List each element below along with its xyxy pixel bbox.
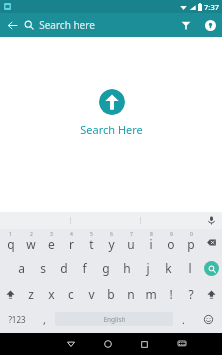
button[interactable]: Back bbox=[52, 333, 89, 355]
staticText: 2 bbox=[30, 231, 33, 238]
staticText: a bbox=[18, 260, 25, 276]
staticText: Search Here bbox=[80, 122, 143, 137]
button[interactable]: 8 bbox=[141, 229, 161, 255]
staticText: z bbox=[28, 286, 34, 302]
button[interactable]: Shift bbox=[201, 281, 222, 307]
staticText: 7:37 bbox=[204, 2, 219, 12]
staticText: i bbox=[149, 236, 153, 252]
staticText: k bbox=[165, 260, 172, 276]
button[interactable]: k bbox=[158, 255, 179, 281]
button[interactable]: Search here bbox=[24, 13, 174, 37]
button[interactable]: 7 bbox=[121, 229, 141, 255]
button[interactable]: h bbox=[116, 255, 137, 281]
button[interactable]: Voice input bbox=[200, 212, 222, 229]
button[interactable]: v bbox=[81, 281, 101, 307]
button[interactable]: b bbox=[101, 281, 121, 307]
staticText: m bbox=[145, 286, 157, 302]
button[interactable]: c bbox=[61, 281, 81, 307]
button[interactable]: 6 bbox=[101, 229, 121, 255]
button[interactable]: Help bbox=[198, 13, 222, 37]
button[interactable]: . bbox=[173, 307, 194, 331]
staticText: g bbox=[102, 260, 110, 276]
staticText: 8 bbox=[150, 231, 153, 238]
staticText: 5 bbox=[90, 231, 93, 238]
button[interactable]: 2 bbox=[21, 229, 41, 255]
staticText: English bbox=[103, 315, 126, 324]
button[interactable]: ? bbox=[181, 281, 201, 307]
staticText: . bbox=[182, 312, 185, 327]
button[interactable]: Search Here bbox=[99, 89, 125, 115]
staticText: p bbox=[187, 236, 195, 252]
button[interactable]: 9 bbox=[161, 229, 181, 255]
staticText: , bbox=[43, 312, 46, 327]
button[interactable]: ! bbox=[161, 281, 181, 307]
button[interactable]: 1 bbox=[0, 229, 21, 255]
button[interactable]: Back bbox=[0, 13, 24, 37]
button[interactable]: Backspace bbox=[201, 229, 222, 255]
button[interactable]: 4 bbox=[61, 229, 81, 255]
staticText: x bbox=[48, 286, 55, 302]
button[interactable]: Home bbox=[89, 333, 126, 355]
staticText: l bbox=[188, 260, 192, 276]
staticText: d bbox=[60, 260, 68, 276]
staticText: w bbox=[26, 236, 36, 252]
staticText: e bbox=[48, 236, 55, 252]
button[interactable]: Filter bbox=[174, 13, 198, 37]
button[interactable]: Recents bbox=[126, 333, 163, 355]
staticText: o bbox=[167, 236, 175, 252]
staticText: ? bbox=[188, 286, 194, 302]
staticText: c bbox=[68, 286, 74, 302]
staticText: r bbox=[69, 236, 74, 252]
button[interactable]: s bbox=[32, 255, 53, 281]
staticText: 6 bbox=[110, 231, 113, 238]
button[interactable]: z bbox=[21, 281, 41, 307]
staticText: j bbox=[146, 260, 150, 276]
staticText: 3 bbox=[50, 231, 53, 238]
button[interactable]: Emoji bbox=[194, 307, 222, 331]
button[interactable]: Search bbox=[200, 255, 222, 281]
button[interactable]: m bbox=[141, 281, 161, 307]
button[interactable]: 0 bbox=[181, 229, 201, 255]
staticText: v bbox=[88, 286, 95, 302]
staticText: Search here bbox=[39, 18, 95, 32]
button[interactable]: l bbox=[179, 255, 200, 281]
staticText: y bbox=[108, 236, 115, 252]
staticText: 7 bbox=[130, 231, 133, 238]
staticText: 4 bbox=[70, 231, 73, 238]
button[interactable]: f bbox=[74, 255, 95, 281]
button[interactable]: a bbox=[11, 255, 32, 281]
staticText: h bbox=[123, 260, 131, 276]
staticText: 1 bbox=[9, 231, 12, 238]
button[interactable]: Hide keyboard bbox=[163, 333, 200, 355]
button[interactable]: x bbox=[41, 281, 61, 307]
staticText: 9 bbox=[170, 231, 173, 238]
staticText: q bbox=[7, 236, 15, 252]
staticText: t bbox=[89, 236, 94, 252]
staticText: n bbox=[127, 286, 135, 302]
staticText: s bbox=[40, 260, 46, 276]
button[interactable]: d bbox=[53, 255, 74, 281]
button[interactable]: n bbox=[121, 281, 141, 307]
staticText: f bbox=[82, 260, 87, 276]
staticText: b bbox=[107, 286, 115, 302]
button[interactable]: , bbox=[34, 307, 55, 331]
staticText: ?123 bbox=[8, 314, 26, 325]
button[interactable]: g bbox=[95, 255, 116, 281]
button[interactable]: English bbox=[55, 312, 173, 326]
button[interactable]: 5 bbox=[81, 229, 101, 255]
button[interactable]: 3 bbox=[41, 229, 61, 255]
staticText: ! bbox=[169, 286, 173, 302]
staticText: 0 bbox=[190, 231, 193, 238]
button[interactable]: ?123 bbox=[0, 307, 34, 331]
staticText: u bbox=[127, 236, 135, 252]
button[interactable]: Shift bbox=[0, 281, 21, 307]
button[interactable]: j bbox=[137, 255, 158, 281]
